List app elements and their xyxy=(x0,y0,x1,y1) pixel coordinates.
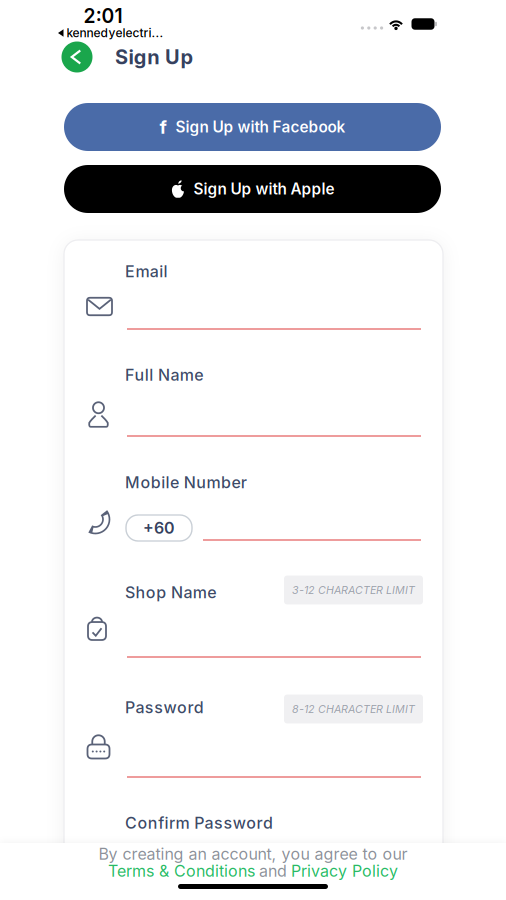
staticText: Mobile Number xyxy=(125,473,247,492)
button[interactable]: Sign Up with Apple xyxy=(64,165,441,213)
staticText: +60 xyxy=(143,518,175,538)
staticText: Full Name xyxy=(125,365,203,385)
staticText: and xyxy=(259,861,287,881)
button[interactable]: Country code +60 xyxy=(126,515,192,541)
staticText: Email xyxy=(125,262,168,281)
staticText: f xyxy=(159,116,166,138)
staticText: Sign Up with Facebook xyxy=(175,118,345,136)
button[interactable]: Privacy Policy xyxy=(291,861,398,881)
staticText: Shop Name xyxy=(125,583,216,602)
staticText: kennedyelectri... xyxy=(66,26,163,40)
button[interactable]: Back xyxy=(61,41,92,72)
staticText: Password xyxy=(125,698,204,717)
staticText: 3-12 CHARACTER LIMIT xyxy=(292,583,415,596)
button[interactable]: f xyxy=(64,103,441,151)
staticText: 8-12 CHARACTER LIMIT xyxy=(292,702,415,715)
staticText: Sign Up with Apple xyxy=(193,180,334,198)
staticText: By creating an account, you agree to our xyxy=(98,844,407,864)
staticText: 2:01 xyxy=(83,4,122,28)
staticText: Confirm Password xyxy=(125,813,273,833)
staticText: Privacy Policy xyxy=(291,861,398,881)
button[interactable]: Terms & Conditions xyxy=(108,861,255,881)
staticText: Terms & Conditions xyxy=(108,861,255,881)
staticText: Sign Up xyxy=(115,45,193,69)
